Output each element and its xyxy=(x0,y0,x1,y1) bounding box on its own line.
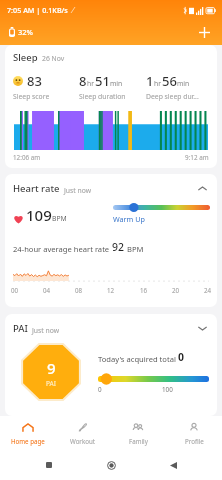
staticText: Heart rate xyxy=(13,182,60,195)
staticText: 16 xyxy=(140,286,148,294)
staticText: 08 xyxy=(75,286,83,294)
staticText: Just now xyxy=(32,326,60,335)
staticText: BPM xyxy=(125,244,144,254)
staticText: PAI xyxy=(13,322,28,335)
staticText: hr xyxy=(154,79,162,88)
button[interactable]: Expand xyxy=(196,322,209,335)
staticText: 0 xyxy=(98,385,102,394)
staticText: 92 xyxy=(112,240,125,254)
staticText: 24-hour average heart rate xyxy=(13,244,112,254)
staticText: min xyxy=(177,79,190,88)
button[interactable]: Collapse xyxy=(196,182,209,195)
staticText: Warm Up xyxy=(113,214,145,224)
staticText: 56 xyxy=(162,72,177,90)
staticText: 83 xyxy=(27,72,42,90)
staticText: Sleep xyxy=(13,51,38,64)
staticText: Sleep score xyxy=(13,92,50,101)
staticText: 26 Nov xyxy=(42,54,65,63)
button[interactable]: PAI xyxy=(13,322,209,335)
staticText: 12 xyxy=(107,286,115,294)
staticText: 32% xyxy=(18,27,33,37)
staticText: 04 xyxy=(43,286,51,294)
staticText: 8 xyxy=(79,72,87,90)
staticText: Workout xyxy=(70,437,96,445)
staticText: 51 xyxy=(95,72,110,90)
button[interactable]: Home page xyxy=(0,416,55,450)
staticText: BPM xyxy=(52,214,67,223)
staticText: Family xyxy=(129,437,148,445)
staticText: Deep sleep dur... xyxy=(146,92,199,101)
staticText: 24 xyxy=(204,286,212,294)
staticText: 109 xyxy=(26,205,52,225)
button[interactable]: Family xyxy=(110,416,166,450)
staticText: 9 xyxy=(47,358,56,378)
staticText: Home page xyxy=(11,437,45,445)
staticText: 7:05 AM | 0.1KB/s xyxy=(7,5,68,15)
staticText: 1 xyxy=(146,72,154,90)
button[interactable]: Add xyxy=(193,21,215,43)
button[interactable]: Heart rate xyxy=(13,182,209,195)
button[interactable]: Workout xyxy=(55,416,110,450)
staticText: PAI xyxy=(46,379,56,388)
staticText: 00 xyxy=(11,286,19,294)
staticText: 9:12 am xyxy=(185,153,209,162)
staticText: 20 xyxy=(172,286,180,294)
staticText: Profile xyxy=(185,437,204,445)
staticText: hr xyxy=(87,79,95,88)
staticText: Just now xyxy=(64,186,92,195)
staticText: min xyxy=(110,79,123,88)
staticText: Today's acquired total xyxy=(98,354,178,364)
button[interactable]: Sleep xyxy=(5,45,217,168)
staticText: 0 xyxy=(178,350,185,364)
staticText: Sleep duration xyxy=(79,92,126,101)
staticText: 100 xyxy=(162,385,173,394)
staticText: 12:06 am xyxy=(13,153,41,162)
button[interactable]: Profile xyxy=(166,416,222,450)
